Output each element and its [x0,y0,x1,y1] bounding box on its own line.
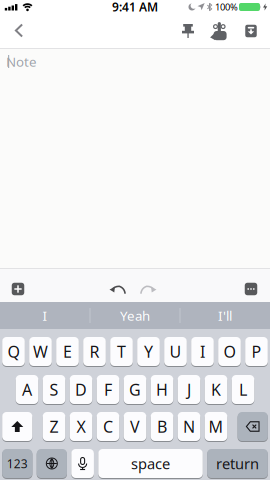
button[interactable]: J [178,375,200,404]
button[interactable]: Y [137,337,160,366]
button[interactable]: K [205,375,227,404]
button[interactable]: X [70,412,92,441]
button[interactable]: S [43,375,65,404]
staticText: I'll [218,307,232,324]
staticText: 123 [7,455,28,471]
button[interactable]: R [83,337,106,366]
button[interactable]: I [0,302,90,329]
staticText: A [22,379,32,400]
button[interactable]: Add [6,277,30,301]
button[interactable]: Back [6,15,31,45]
staticText: G [129,379,141,400]
button[interactable]: Reminder [203,16,232,46]
staticText: T [117,341,126,362]
staticText: C [103,416,113,437]
button[interactable]: W [29,337,52,366]
button[interactable]: Redo [134,277,162,300]
staticText: K [211,379,221,400]
button[interactable]: C [97,412,119,441]
staticText: M [208,416,223,437]
button[interactable]: Delete [238,412,268,441]
button[interactable]: M [205,412,227,441]
button[interactable]: Pin [176,18,200,44]
staticText: Z [49,416,58,437]
staticText: Y [144,341,153,362]
button[interactable]: Q [2,337,25,366]
staticText: D [75,379,87,400]
staticText: E [63,341,72,362]
button[interactable]: D [70,375,92,404]
button[interactable]: A [16,375,38,404]
staticText: J [187,379,191,400]
button[interactable]: Z [43,412,65,441]
staticText: 100% [215,1,238,13]
staticText: P [251,341,261,362]
button[interactable]: Next keyboard [37,449,67,478]
staticText: L [239,379,247,400]
button[interactable]: Shift [2,412,32,441]
staticText: Q [7,341,19,362]
button[interactable]: O [218,337,241,366]
button[interactable]: Archive [239,19,263,43]
button[interactable]: Dictate [71,449,94,478]
button[interactable]: N [178,412,200,441]
button[interactable]: Numbers [2,449,32,478]
staticText: O [223,341,235,362]
staticText: Note [6,53,37,70]
button[interactable]: F [97,375,119,404]
staticText: W [33,341,48,362]
button[interactable]: L [232,375,254,404]
staticText: B [157,416,167,437]
staticText: H [156,379,168,400]
staticText: F [104,379,112,400]
button[interactable]: return [207,449,268,478]
staticText: Yeah [120,307,150,324]
staticText: return [216,454,259,473]
button[interactable]: More [239,277,263,301]
staticText: I [42,307,47,324]
button[interactable]: space [98,449,203,478]
button[interactable]: G [124,375,146,404]
button[interactable]: H [151,375,173,404]
button[interactable]: P [245,337,268,366]
staticText: U [169,341,181,362]
button[interactable]: E [56,337,79,366]
button[interactable]: U [164,337,187,366]
button[interactable]: Undo [103,277,131,300]
button[interactable]: B [151,412,173,441]
staticText: 9:41 AM [112,0,158,15]
staticText: space [131,454,170,473]
button[interactable]: I'll [180,302,270,329]
button[interactable]: I [191,337,214,366]
button[interactable]: T [110,337,133,366]
staticText: V [130,416,140,437]
staticText: N [183,416,195,437]
staticText: X [76,416,85,437]
button[interactable]: V [124,412,146,441]
staticText: S [49,379,58,400]
button[interactable]: Yeah [90,302,180,329]
staticText: R [89,341,99,362]
staticText: I [200,341,205,362]
